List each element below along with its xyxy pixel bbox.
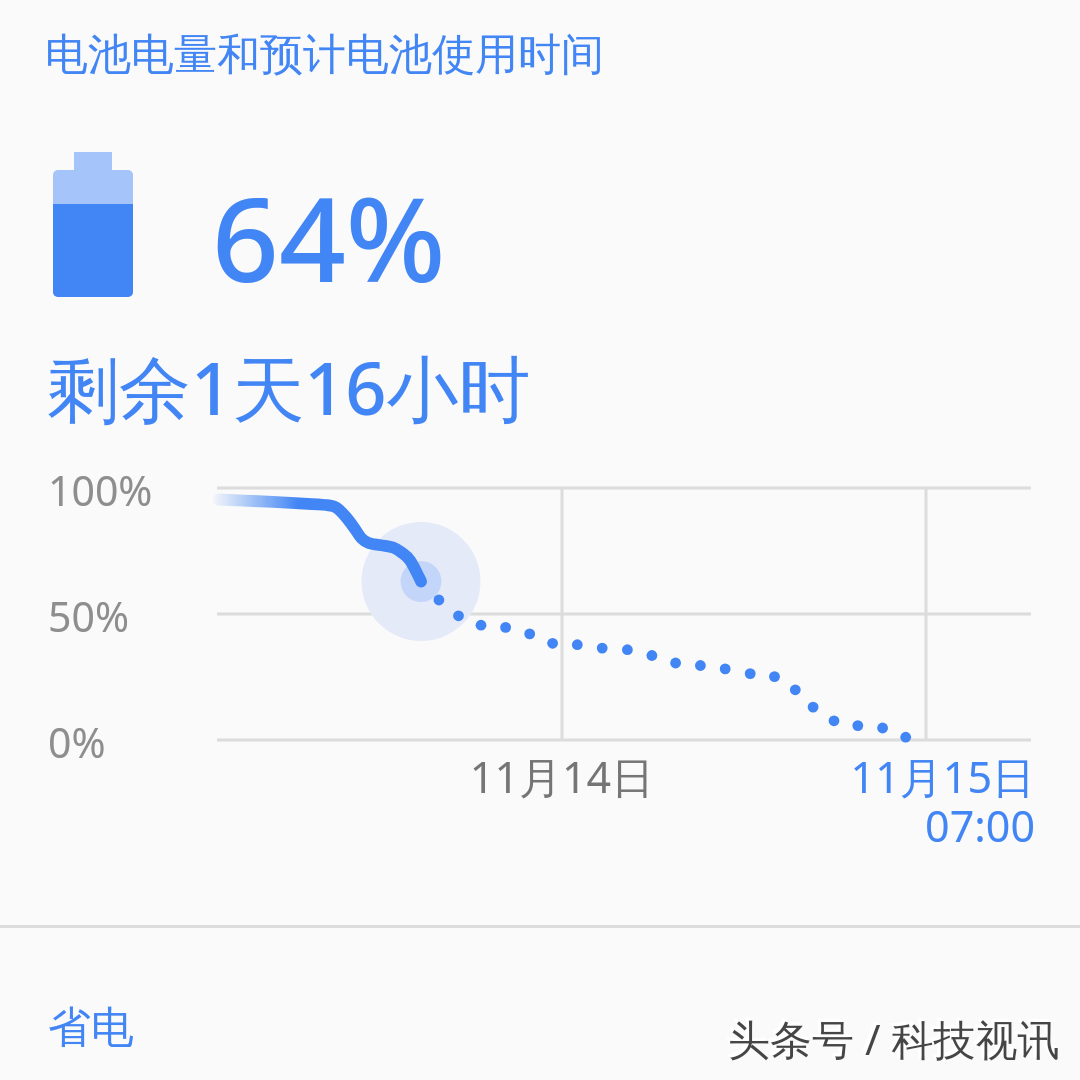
staticText: 64% bbox=[212, 157, 446, 316]
staticText: 头条号 / 科技视讯 bbox=[726, 1008, 1058, 1065]
button[interactable]: 省电 bbox=[0, 928, 182, 1080]
staticText: 省电 bbox=[48, 1001, 134, 1052]
staticText: 11月14日 bbox=[437, 747, 687, 806]
staticText: 100% bbox=[48, 462, 153, 518]
other: Battery level 64 percent, chart bbox=[0, 0, 1080, 1080]
staticText: 头条号 / 科技视讯 bbox=[725, 1007, 1057, 1064]
staticText: 电池电量和预计电池使用时间 bbox=[45, 28, 604, 82]
staticText: 头条号 / 科技视讯 bbox=[728, 1010, 1060, 1067]
staticText: 50% bbox=[48, 588, 129, 644]
staticText: 剩余1天16小时 bbox=[47, 338, 531, 436]
staticText: 0% bbox=[48, 714, 106, 770]
staticText: 11月15日 07:00 bbox=[700, 747, 1035, 854]
